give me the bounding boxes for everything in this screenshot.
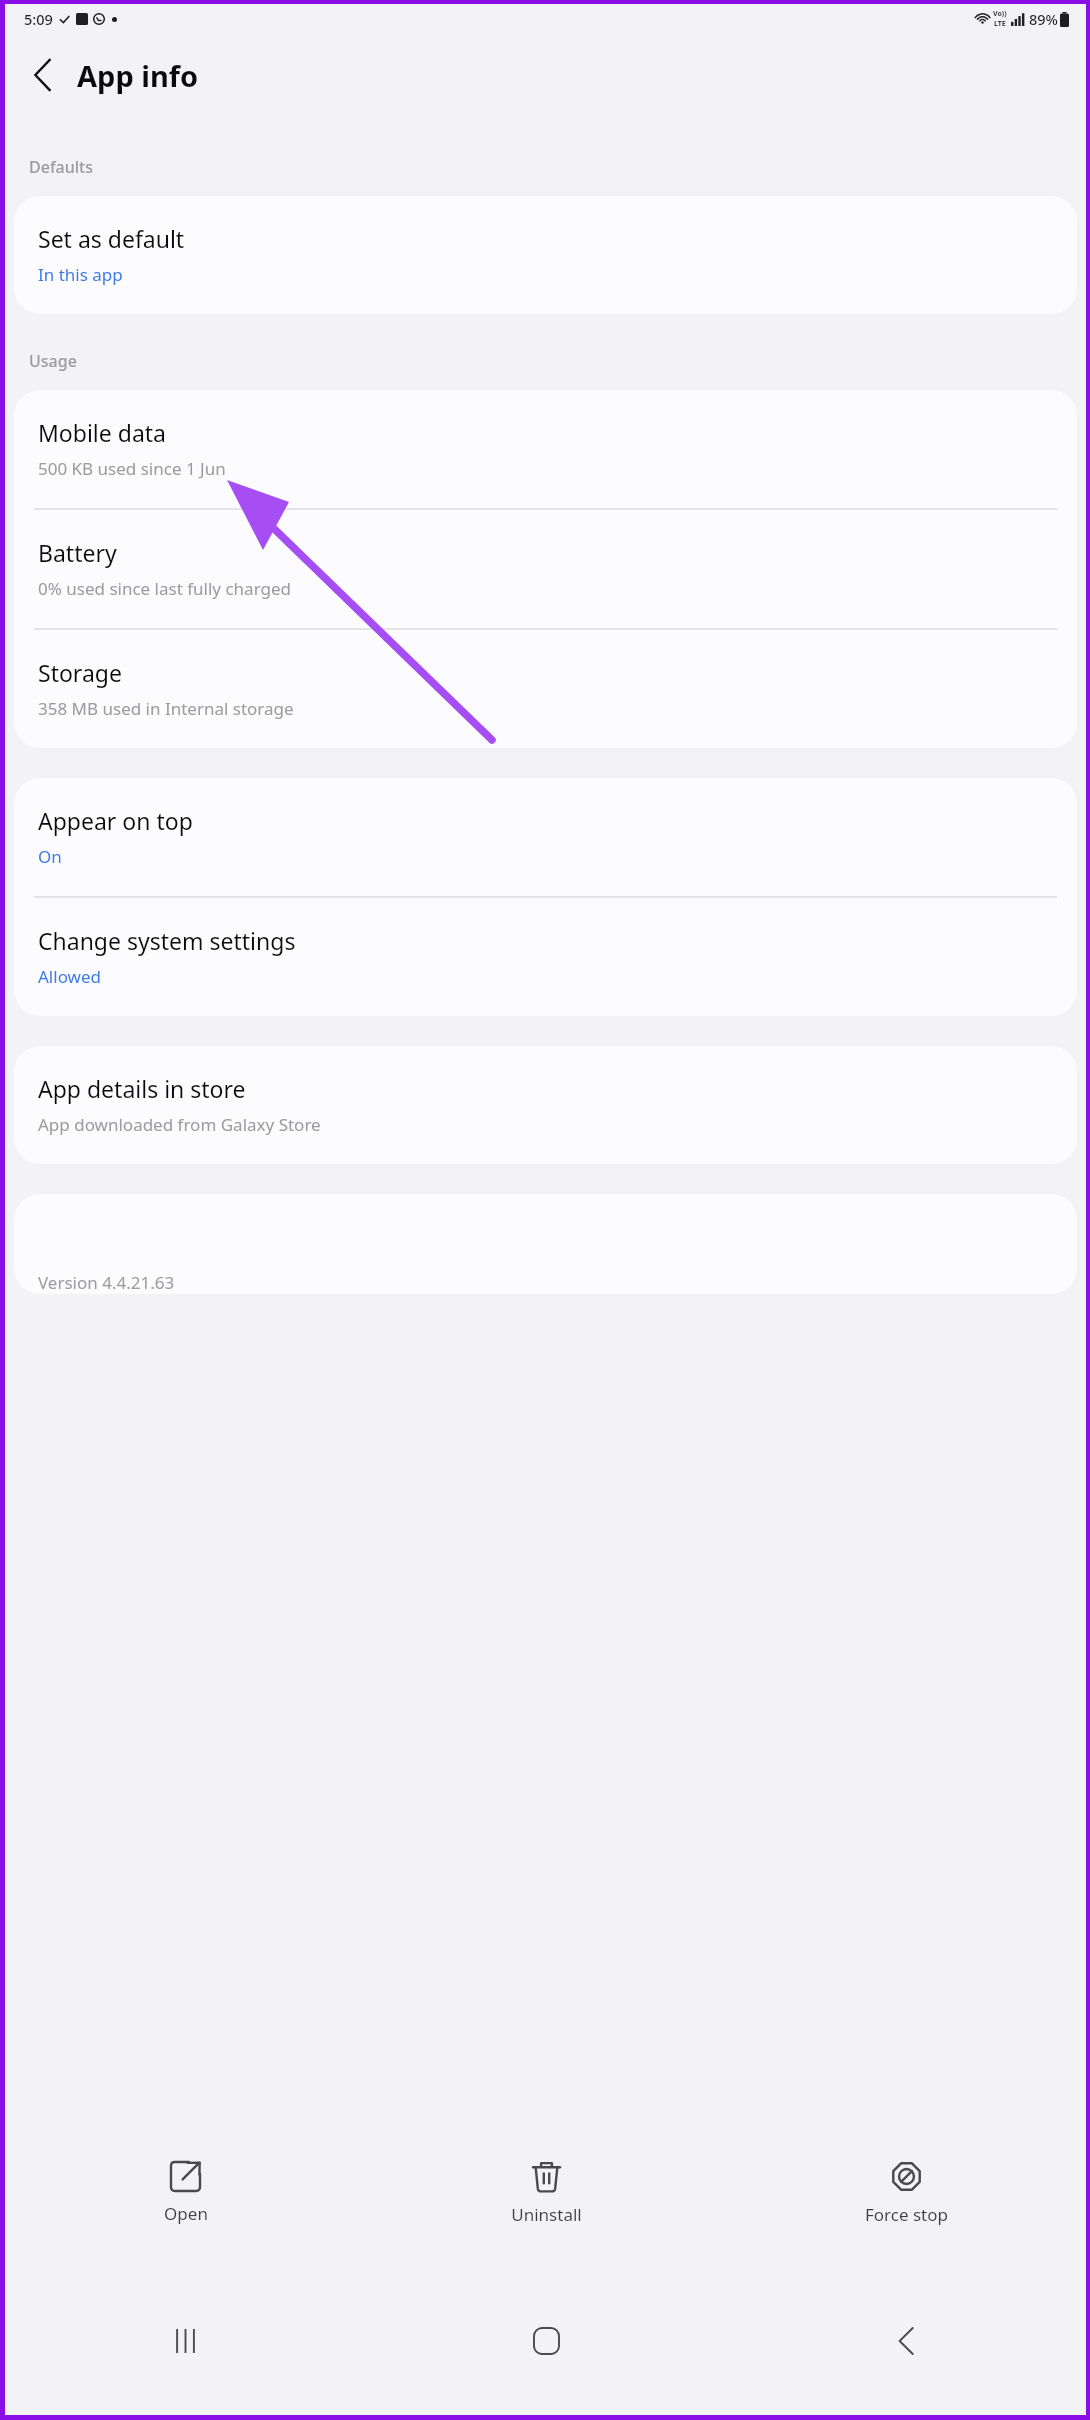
staticText: Allowed [38,965,101,988]
staticText: Open [164,2202,208,2225]
staticText: Change system settings [38,925,296,956]
button[interactable]: Back [13,46,71,104]
staticText: Appear on top [38,805,193,836]
button[interactable]: App details in store [14,1046,1077,1164]
staticText: LTE [994,19,1006,29]
staticText: 5:09 [24,9,53,29]
staticText: On [38,845,62,868]
button[interactable]: Open [5,2154,366,2233]
staticText: Vo)) [993,9,1007,19]
button[interactable]: Recents [5,2267,366,2415]
button[interactable]: Home [366,2267,726,2415]
staticText: 89% [1029,9,1058,29]
staticText: Usage [29,350,77,372]
button[interactable]: Back [726,2267,1086,2415]
staticText: App info [77,56,199,95]
staticText: Battery [38,537,117,568]
button[interactable]: Force stop [726,2153,1086,2234]
staticText: App details in store [38,1073,246,1104]
staticText: Force stop [865,2203,948,2226]
button[interactable]: Uninstall [366,2153,726,2234]
button[interactable]: Mobile data [14,390,1077,508]
staticText: Set as default [38,223,185,254]
staticText: Storage [38,657,122,688]
button[interactable]: Set as default [14,196,1077,314]
button[interactable]: Appear on top [14,778,1077,896]
button[interactable]: Storage [14,630,1077,748]
staticText: 0% used since last fully charged [38,577,291,600]
staticText: Defaults [29,156,94,178]
staticText: Uninstall [511,2203,582,2226]
button[interactable]: Battery [14,510,1077,628]
staticText: Version 4.4.21.63 [38,1271,175,1294]
button[interactable]: Change system settings [14,898,1077,1016]
staticText: App downloaded from Galaxy Store [38,1113,321,1136]
staticText: 358 MB used in Internal storage [38,697,294,720]
staticText: 500 KB used since 1 Jun [38,457,226,480]
staticText: In this app [38,263,123,286]
staticText: Mobile data [38,417,166,448]
